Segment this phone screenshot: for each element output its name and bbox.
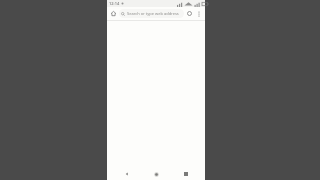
staticText: Search or type web address [127, 11, 179, 16]
button[interactable]: Home [109, 9, 118, 18]
staticText: 12:14 [109, 1, 120, 6]
button[interactable]: Search or type web address [119, 9, 184, 18]
button[interactable]: Home [146, 168, 166, 180]
button[interactable]: Reload [185, 9, 194, 18]
button[interactable]: Recent apps [176, 168, 196, 180]
button[interactable]: More options [194, 9, 203, 18]
button[interactable]: Back [117, 168, 137, 180]
